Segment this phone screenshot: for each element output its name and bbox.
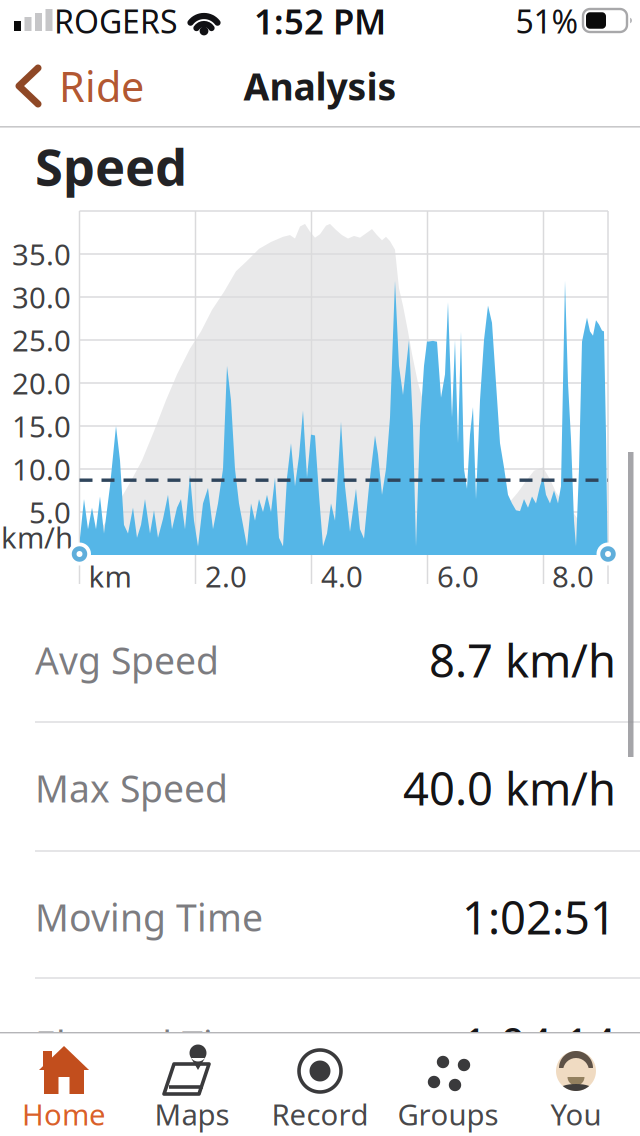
staticText: Moving Time	[35, 892, 263, 942]
button[interactable]	[68, 542, 91, 565]
button[interactable]	[596, 542, 619, 565]
staticText: Analysis	[243, 61, 396, 111]
staticText: 1:02:51	[462, 887, 616, 947]
button[interactable]: Groups	[385, 1040, 511, 1132]
staticText: Home	[22, 1094, 106, 1133]
button[interactable]: Ride	[15, 56, 175, 116]
staticText: Avg Speed	[35, 635, 219, 685]
staticText: Elapsed Time	[35, 1019, 269, 1069]
staticText: Speed	[35, 132, 187, 200]
staticText: 51%	[515, 0, 578, 42]
staticText: 1:52 PM	[254, 0, 386, 44]
staticText: Groups	[397, 1094, 498, 1133]
staticText: 35.0	[12, 234, 71, 273]
staticText: You	[550, 1094, 601, 1133]
staticText: Ride	[59, 59, 144, 113]
staticText: 2.0	[205, 556, 247, 595]
staticText: km	[88, 556, 131, 595]
staticText: 1:04:14	[462, 1014, 616, 1074]
staticText: 25.0	[12, 320, 71, 359]
button[interactable]: Home	[1, 1040, 127, 1132]
staticText: 8.0	[552, 556, 594, 595]
staticText: Maps	[154, 1094, 229, 1133]
staticText: 10.0	[12, 449, 71, 488]
staticText: 8.7 km/h	[429, 630, 616, 690]
button[interactable]: You	[513, 1040, 639, 1132]
staticText: Record	[271, 1094, 368, 1133]
staticText: 6.0	[437, 556, 479, 595]
staticText: 30.0	[12, 277, 71, 316]
staticText: Max Speed	[35, 763, 228, 813]
button[interactable]: Maps	[129, 1040, 255, 1132]
staticText: 20.0	[12, 363, 71, 402]
button[interactable]: Record	[257, 1040, 383, 1132]
staticText: ROGERS	[54, 0, 178, 42]
staticText: 4.0	[321, 556, 363, 595]
staticText: 15.0	[12, 406, 71, 445]
staticText: 40.0 km/h	[403, 758, 616, 818]
staticText: km/h	[1, 517, 73, 556]
staticText: 5.0	[29, 492, 71, 531]
